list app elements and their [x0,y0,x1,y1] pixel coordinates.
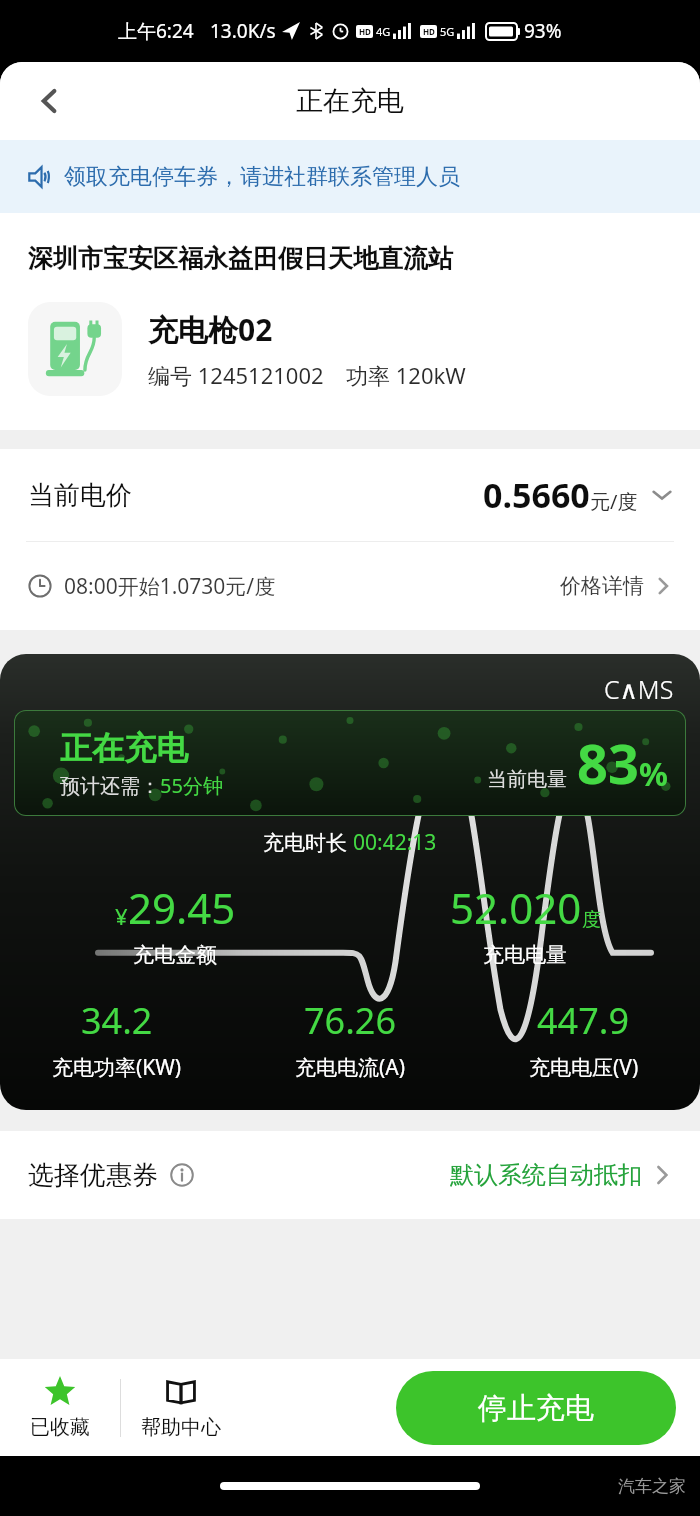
button[interactable]: Back [22,73,78,129]
staticText: 度 [582,908,601,932]
staticText: 76.26 [304,996,397,1045]
staticText: 正在充电 [60,728,188,768]
staticText: 深圳市宝安区福永益田假日天地直流站 [28,243,453,274]
button[interactable]: 已收藏 [0,1359,120,1456]
button[interactable]: 当前电价 [0,449,700,541]
staticText: 充电电量 [483,942,567,968]
button[interactable]: 停止充电 [396,1371,676,1445]
button[interactable]: 帮助中心 [121,1359,241,1456]
staticText: 52.020 [450,879,582,936]
button[interactable]: 领取充电停车券，请进社群联系管理人员 [0,140,700,213]
staticText: 功率 120kW [346,360,466,390]
staticText: 34.2 [81,996,153,1045]
staticText: 充电枪02 [148,309,273,350]
staticText: 93% [524,18,562,44]
staticText: 选择优惠券 [28,1159,158,1192]
staticText: 汽车之家 [618,1476,686,1497]
staticText: 编号 1245121002 [148,360,324,390]
staticText: 元/度 [590,488,638,515]
staticText: HD [359,26,371,37]
staticText: 29.45 [128,879,236,936]
staticText: 83 [577,726,639,800]
staticText: 领取充电停车券，请进社群联系管理人员 [64,163,460,191]
staticText: % [639,752,668,796]
staticText: 充电电流(A) [295,1053,406,1082]
staticText: C∧MS [604,672,674,706]
staticText: 55分钟 [160,772,223,799]
staticText: 当前电量 [487,767,567,792]
button[interactable]: 选择优惠券 [0,1131,700,1219]
staticText: 0.5660 [483,472,590,518]
staticText: 08:00开始1.0730元/度 [64,572,276,601]
staticText: 447.9 [537,996,630,1045]
staticText: 4G [376,24,391,39]
staticText: HD [423,26,435,37]
button[interactable]: 08:00开始1.0730元/度 [0,542,700,630]
staticText: 停止充电 [478,1390,594,1427]
staticText: 充电时长 [263,828,353,857]
staticText: 00:42:13 [353,828,437,857]
staticText: 上午6:24 [118,18,194,44]
staticText: 充电金额 [133,942,217,968]
staticText: 价格详情 [560,573,644,599]
staticText: 默认系统自动抵扣 [450,1160,642,1190]
staticText: 13.0K/s [210,18,276,44]
staticText: 帮助中心 [141,1415,221,1440]
staticText: 5G [440,24,455,39]
staticText: 充电电压(V) [529,1053,639,1082]
staticText: ¥ [115,901,128,931]
staticText: 已收藏 [30,1415,90,1440]
staticText: 预计还需： [60,774,160,799]
staticText: 当前电价 [28,479,132,512]
staticText: 正在充电 [296,84,404,118]
staticText: 充电功率(KW) [52,1053,182,1082]
other: Info [170,1163,194,1187]
